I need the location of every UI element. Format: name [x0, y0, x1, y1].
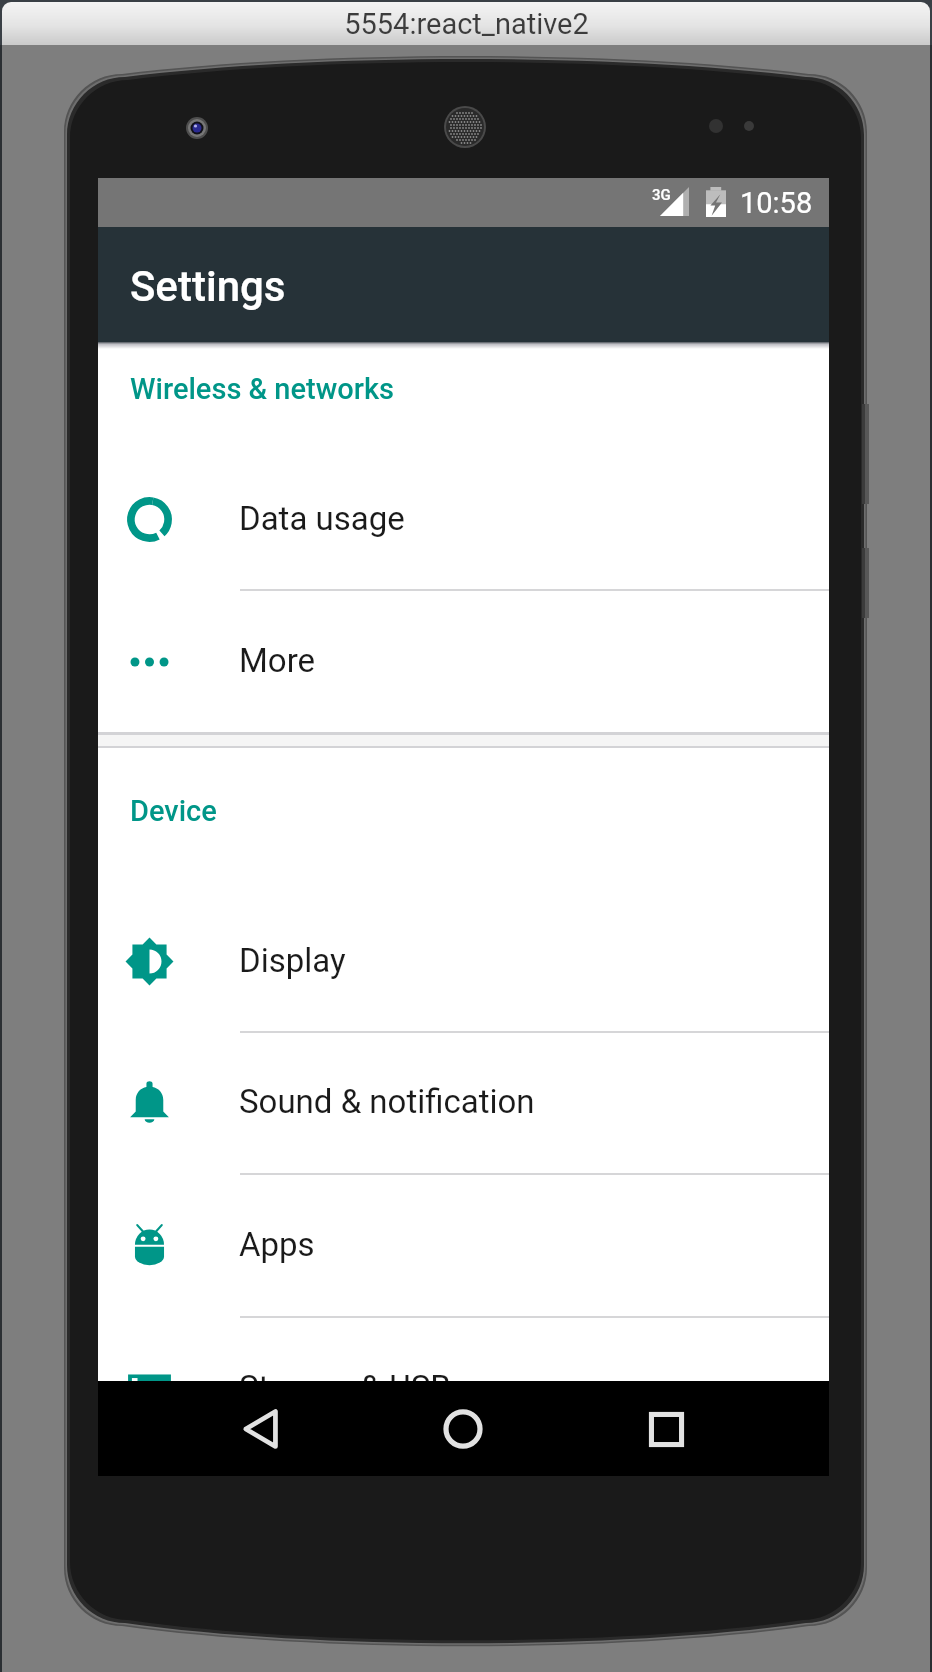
button[interactable]: Settings: [98, 227, 829, 343]
button[interactable]: Apps: [98, 1174, 829, 1316]
staticText: Settings: [130, 262, 286, 311]
button[interactable]: Back: [217, 1385, 305, 1473]
staticText: More: [239, 641, 316, 680]
staticText: 10:58: [740, 186, 813, 220]
staticText: 5554:react_native2: [344, 7, 589, 41]
button[interactable]: Home: [419, 1385, 507, 1473]
staticText: Storage & USB: [239, 1368, 451, 1407]
button[interactable]: Data usage: [98, 448, 829, 590]
staticText: 3G: [652, 186, 671, 204]
staticText: Data usage: [239, 499, 405, 538]
button[interactable]: Recent apps: [622, 1385, 710, 1473]
staticText: Display: [239, 941, 346, 980]
staticText: Device: [130, 794, 217, 828]
staticText: Apps: [239, 1225, 315, 1264]
staticText: Sound & notification: [239, 1082, 535, 1121]
button[interactable]: Storage & USB: [98, 1317, 829, 1459]
button[interactable]: Sound & notification: [98, 1031, 829, 1173]
button[interactable]: More: [98, 590, 829, 732]
staticText: Wireless & networks: [130, 372, 395, 406]
button[interactable]: Display: [98, 890, 829, 1032]
